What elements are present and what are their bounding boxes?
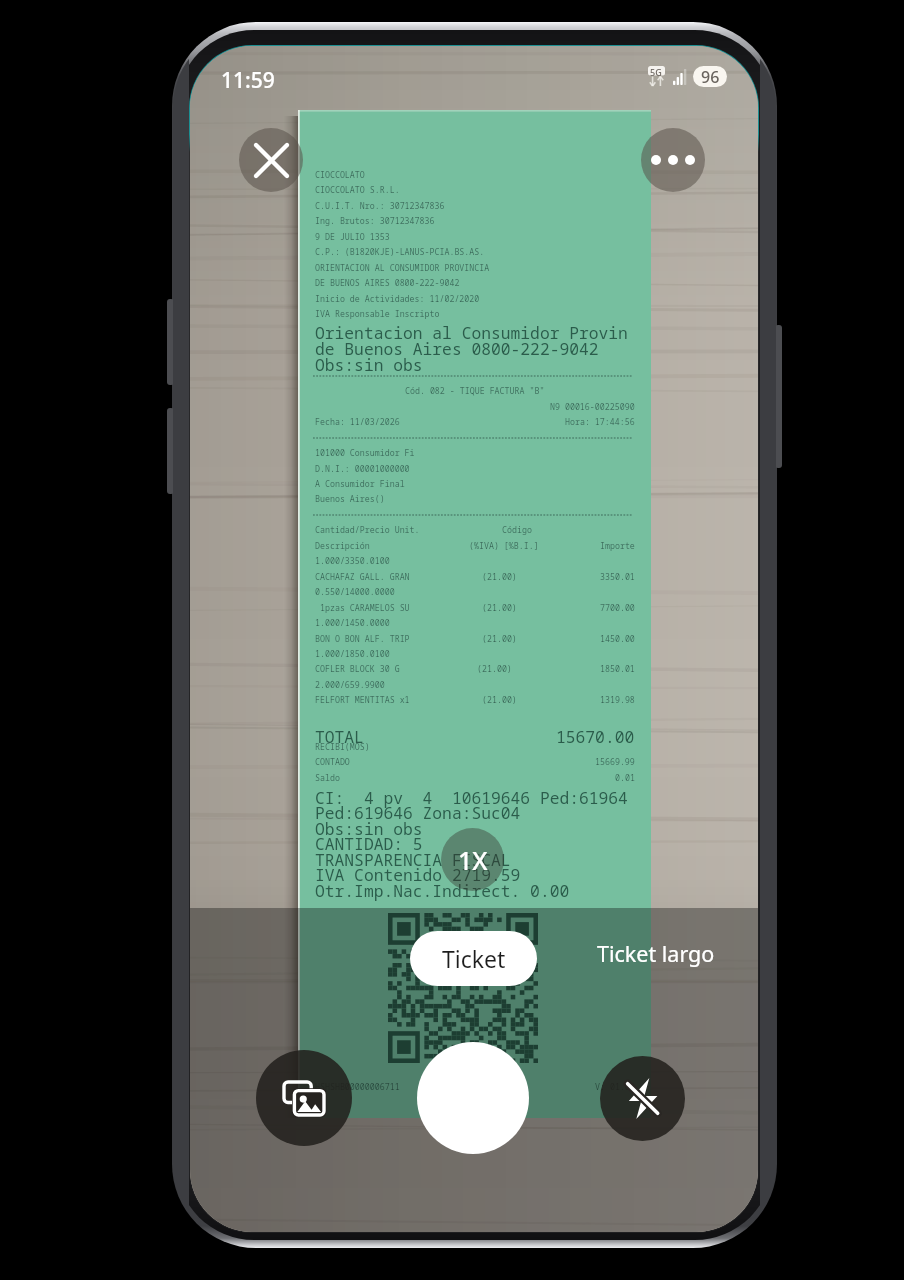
- staticText: Ped:619646 Zona:Suc04: [315, 802, 521, 824]
- button[interactable]: More options: [641, 128, 705, 192]
- staticText: Otr.Imp.Nac.Indirect. 0.00: [315, 880, 570, 902]
- staticText: Saldo: [315, 772, 340, 783]
- staticText: 1450.00: [600, 633, 635, 644]
- staticText: 1319.98: [600, 694, 635, 705]
- staticText: 1X: [458, 843, 488, 877]
- staticText: Hora: 17:44:56: [565, 416, 635, 427]
- staticText: Orientacion al Consumidor Provin: [315, 322, 628, 344]
- staticText: FELFORT MENTITAS x1: [315, 694, 410, 705]
- staticText: 2.000/659.9900: [315, 679, 385, 690]
- staticText: de Buenos Aires 0800-222-9042: [315, 338, 599, 360]
- staticText: Código: [502, 524, 532, 535]
- staticText: TRANSPARENCIA FISCAL: [315, 849, 511, 871]
- staticText: DE BUENOS AIRES 0800-222-9042: [315, 277, 460, 288]
- staticText: COFLER BLOCK 30 G: [315, 663, 400, 674]
- staticText: V: 01.00: [595, 1081, 635, 1092]
- staticText: (%IVA) [%B.I.]: [469, 540, 539, 551]
- staticText: Obs:sin obs: [315, 354, 423, 376]
- staticText: 1850.01: [600, 663, 635, 674]
- staticText: Descripción: [315, 540, 370, 551]
- staticText: 9 DE JULIO 1353: [315, 231, 390, 242]
- staticText: Ticket largo: [597, 939, 715, 968]
- staticText: 1.000/1850.0100: [315, 648, 390, 659]
- staticText: Cantidad/Precio Unit.: [315, 524, 420, 535]
- staticText: Ticket: [442, 943, 506, 974]
- staticText: 15669.99: [595, 756, 635, 767]
- staticText: CANTIDAD: 5: [315, 833, 423, 855]
- staticText: (21.00): [482, 633, 517, 644]
- staticText: 0.01: [615, 772, 635, 783]
- staticText: 3350.01: [600, 571, 635, 582]
- button[interactable]: Gallery: [256, 1050, 352, 1146]
- button[interactable]: Flash off: [600, 1056, 685, 1141]
- staticText: TOTAL: [315, 726, 364, 748]
- staticText: (21.00): [482, 602, 517, 613]
- staticText: Importe: [600, 540, 635, 551]
- staticText: Cód. 082 - TIQUE FACTURA "B": [405, 385, 545, 396]
- staticText: 101000 Consumidor Fi: [315, 447, 415, 458]
- staticText: BON O BON ALF. TRIP: [315, 633, 410, 644]
- staticText: Ing. Brutos: 30712347836: [315, 215, 435, 226]
- staticText: CONTADO: [315, 756, 350, 767]
- staticText: C.P.: (B1820KJE)-LANUS-PCIA.BS.AS.: [315, 246, 485, 257]
- staticText: 0.550/14000.0000: [315, 586, 395, 597]
- staticText: Obs:sin obs: [315, 818, 423, 840]
- staticText: 11:59: [221, 66, 275, 95]
- staticText: 1.000/1450.0000: [315, 617, 390, 628]
- staticText: 1.000/3350.0100: [315, 555, 390, 566]
- staticText: HSHSHB00000006711: [315, 1081, 400, 1092]
- staticText: Buenos Aires(): [315, 493, 385, 504]
- staticText: IVA Contenido 2719.59: [315, 864, 521, 886]
- button[interactable]: Ticket: [410, 931, 537, 986]
- staticText: Fecha: 11/03/2026: [315, 416, 400, 427]
- staticText: 15670.00: [556, 726, 635, 748]
- staticText: (21.00): [482, 694, 517, 705]
- staticText: D.N.I.: 00001000000: [315, 463, 410, 474]
- staticText: 7700.00: [600, 602, 635, 613]
- staticText: ORIENTACION AL CONSUMIDOR PROVINCIA: [315, 262, 490, 273]
- staticText: C.U.I.T. Nro.: 30712347836: [315, 200, 445, 211]
- staticText: CACHAFAZ GALL. GRAN: [315, 571, 410, 582]
- staticText: (21.00): [482, 571, 517, 582]
- staticText: N9 00016-00225090: [550, 401, 635, 412]
- staticText: CIOCCOLATO: [315, 169, 365, 180]
- staticText: 5G: [650, 66, 662, 78]
- staticText: 96: [701, 66, 720, 87]
- button[interactable]: Close: [239, 128, 303, 192]
- button[interactable]: Zoom 1x: [441, 828, 504, 891]
- staticText: CI: 4 pv 4 10619646 Ped:61964: [315, 787, 628, 809]
- staticText: CIOCCOLATO S.R.L.: [315, 184, 400, 195]
- staticText: Inicio de Actividades: 11/02/2020: [315, 293, 480, 304]
- button[interactable]: Take picture: [417, 1042, 529, 1154]
- staticText: RECIBI(MOS): [315, 741, 370, 752]
- button[interactable]: Ticket largo: [590, 926, 722, 981]
- staticText: A Consumidor Final: [315, 478, 405, 489]
- staticText: (21.00): [477, 663, 512, 674]
- staticText: IVA Responsable Inscripto: [315, 308, 440, 319]
- staticText: 1pzas CARAMELOS SU: [315, 602, 410, 613]
